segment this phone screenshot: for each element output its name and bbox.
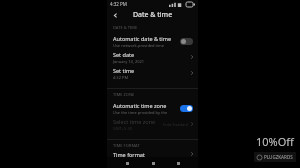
button[interactable]: Set date: [107, 49, 198, 65]
button[interactable]: Toggle: [180, 38, 193, 45]
staticText: Set time: [113, 67, 135, 74]
button[interactable]: Back: [173, 158, 183, 168]
staticText: Use the time provided by the carrier net…: [113, 110, 177, 115]
staticText: TIME FORMAT: [113, 143, 140, 148]
button[interactable]: Back: [109, 9, 121, 21]
staticText: Automatic time zone: [113, 102, 167, 109]
staticText: Time format: [113, 151, 145, 157]
button[interactable]: Toggle: [180, 105, 193, 112]
button[interactable]: Time format: [107, 151, 198, 157]
staticText: Select time zone: [113, 118, 156, 125]
button[interactable]: Home: [148, 158, 158, 168]
staticText: Use network-provided time: [113, 43, 165, 48]
staticText: Date & time: [133, 10, 173, 20]
button[interactable]: Select time zone: [107, 116, 198, 132]
staticText: January 14, 2021: [113, 59, 145, 64]
staticText: GMT+5:30: [113, 126, 132, 131]
button[interactable]: Set time: [107, 65, 198, 81]
staticText: DATE & TIME: [113, 25, 138, 30]
staticText: India Standard: [163, 122, 188, 127]
staticText: TIME ZONE: [113, 92, 135, 97]
staticText: 4:32 PM: [113, 75, 129, 80]
staticText: Automatic date & time: [113, 35, 172, 42]
staticText: 4:32 PM: [110, 1, 127, 7]
button[interactable]: Automatic time zone: [107, 100, 198, 116]
staticText: Set date: [113, 51, 135, 58]
staticText: 10%Off: [256, 134, 294, 149]
button[interactable]: Recents: [122, 158, 132, 168]
button[interactable]: Automatic date & time: [107, 33, 198, 49]
staticText: PLUGZKARDS: [264, 154, 293, 160]
